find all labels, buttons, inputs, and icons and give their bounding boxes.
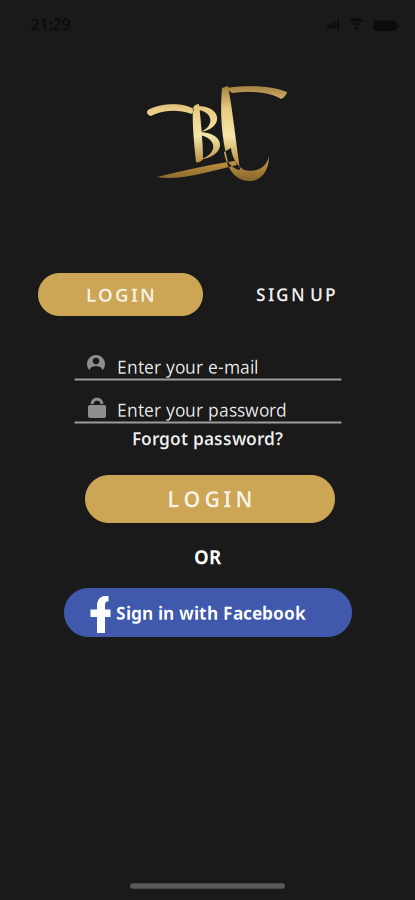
button[interactable]: L O G I N [85, 475, 335, 523]
staticText: Enter your e-mail [117, 355, 258, 378]
staticText: Sign in with Facebook [116, 601, 306, 624]
button[interactable]: Forgot password? [122, 428, 292, 448]
staticText: Forgot password? [132, 427, 283, 450]
button[interactable]: Enter your password [74, 386, 341, 428]
button[interactable]: S I G N U P [236, 284, 356, 304]
staticText: L O G I N [167, 485, 252, 513]
staticText: S I G N U P [256, 283, 336, 306]
staticText: Enter your password [117, 398, 287, 421]
button[interactable]: L O G I N [38, 273, 203, 316]
button[interactable]: Enter your e-mail [74, 344, 341, 386]
button[interactable]: Sign in with Facebook [64, 588, 352, 637]
staticText: 21:29 [30, 13, 70, 35]
staticText: OR [194, 545, 221, 569]
staticText: L O G I N [86, 282, 155, 307]
